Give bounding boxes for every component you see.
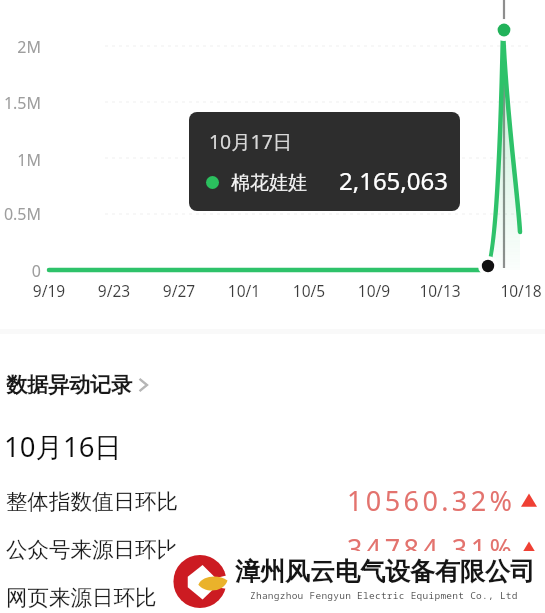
staticText: 10/5 [279,280,339,301]
staticText: 0 [0,260,41,282]
staticText: 10/18 [491,280,545,301]
staticText: 整体指数值日环比 [6,488,178,515]
staticText: 2M [0,36,41,58]
staticText: 数据异动记录 [6,372,132,398]
staticText: 9/19 [19,280,79,301]
staticText: 1M [0,149,41,171]
staticText: 9/27 [149,280,209,301]
staticText: 2,165,063 [339,164,448,197]
staticText: 网页来源日环比 [6,584,157,611]
staticText: 漳州风云电气设备有限公司 [235,556,535,587]
staticText: 10560.32% [347,482,516,516]
staticText: 10/1 [214,280,274,301]
other: Company logo [172,555,229,608]
button[interactable]: 数据异动记录 [0,370,159,400]
staticText: 10月17日 [209,128,293,154]
staticText: Zhangzhou Fengyun Electric Equipment Co.… [250,589,518,602]
button[interactable]: 网页来源日环比 [0,580,545,613]
button[interactable]: 整体指数值日环比 [0,484,545,518]
staticText: 10/13 [410,280,470,301]
staticText: 10/9 [344,280,404,301]
staticText: 1.5M [0,92,41,114]
staticText: 34784.31% [347,530,516,564]
staticText: 9/23 [84,280,144,301]
staticText: 10月16日 [4,428,122,466]
staticText: 0.5M [0,203,41,225]
staticText: 棉花娃娃 [231,171,307,195]
staticText: 公众号来源日环比 [6,536,178,563]
button[interactable]: 公众号来源日环比 [0,532,545,566]
